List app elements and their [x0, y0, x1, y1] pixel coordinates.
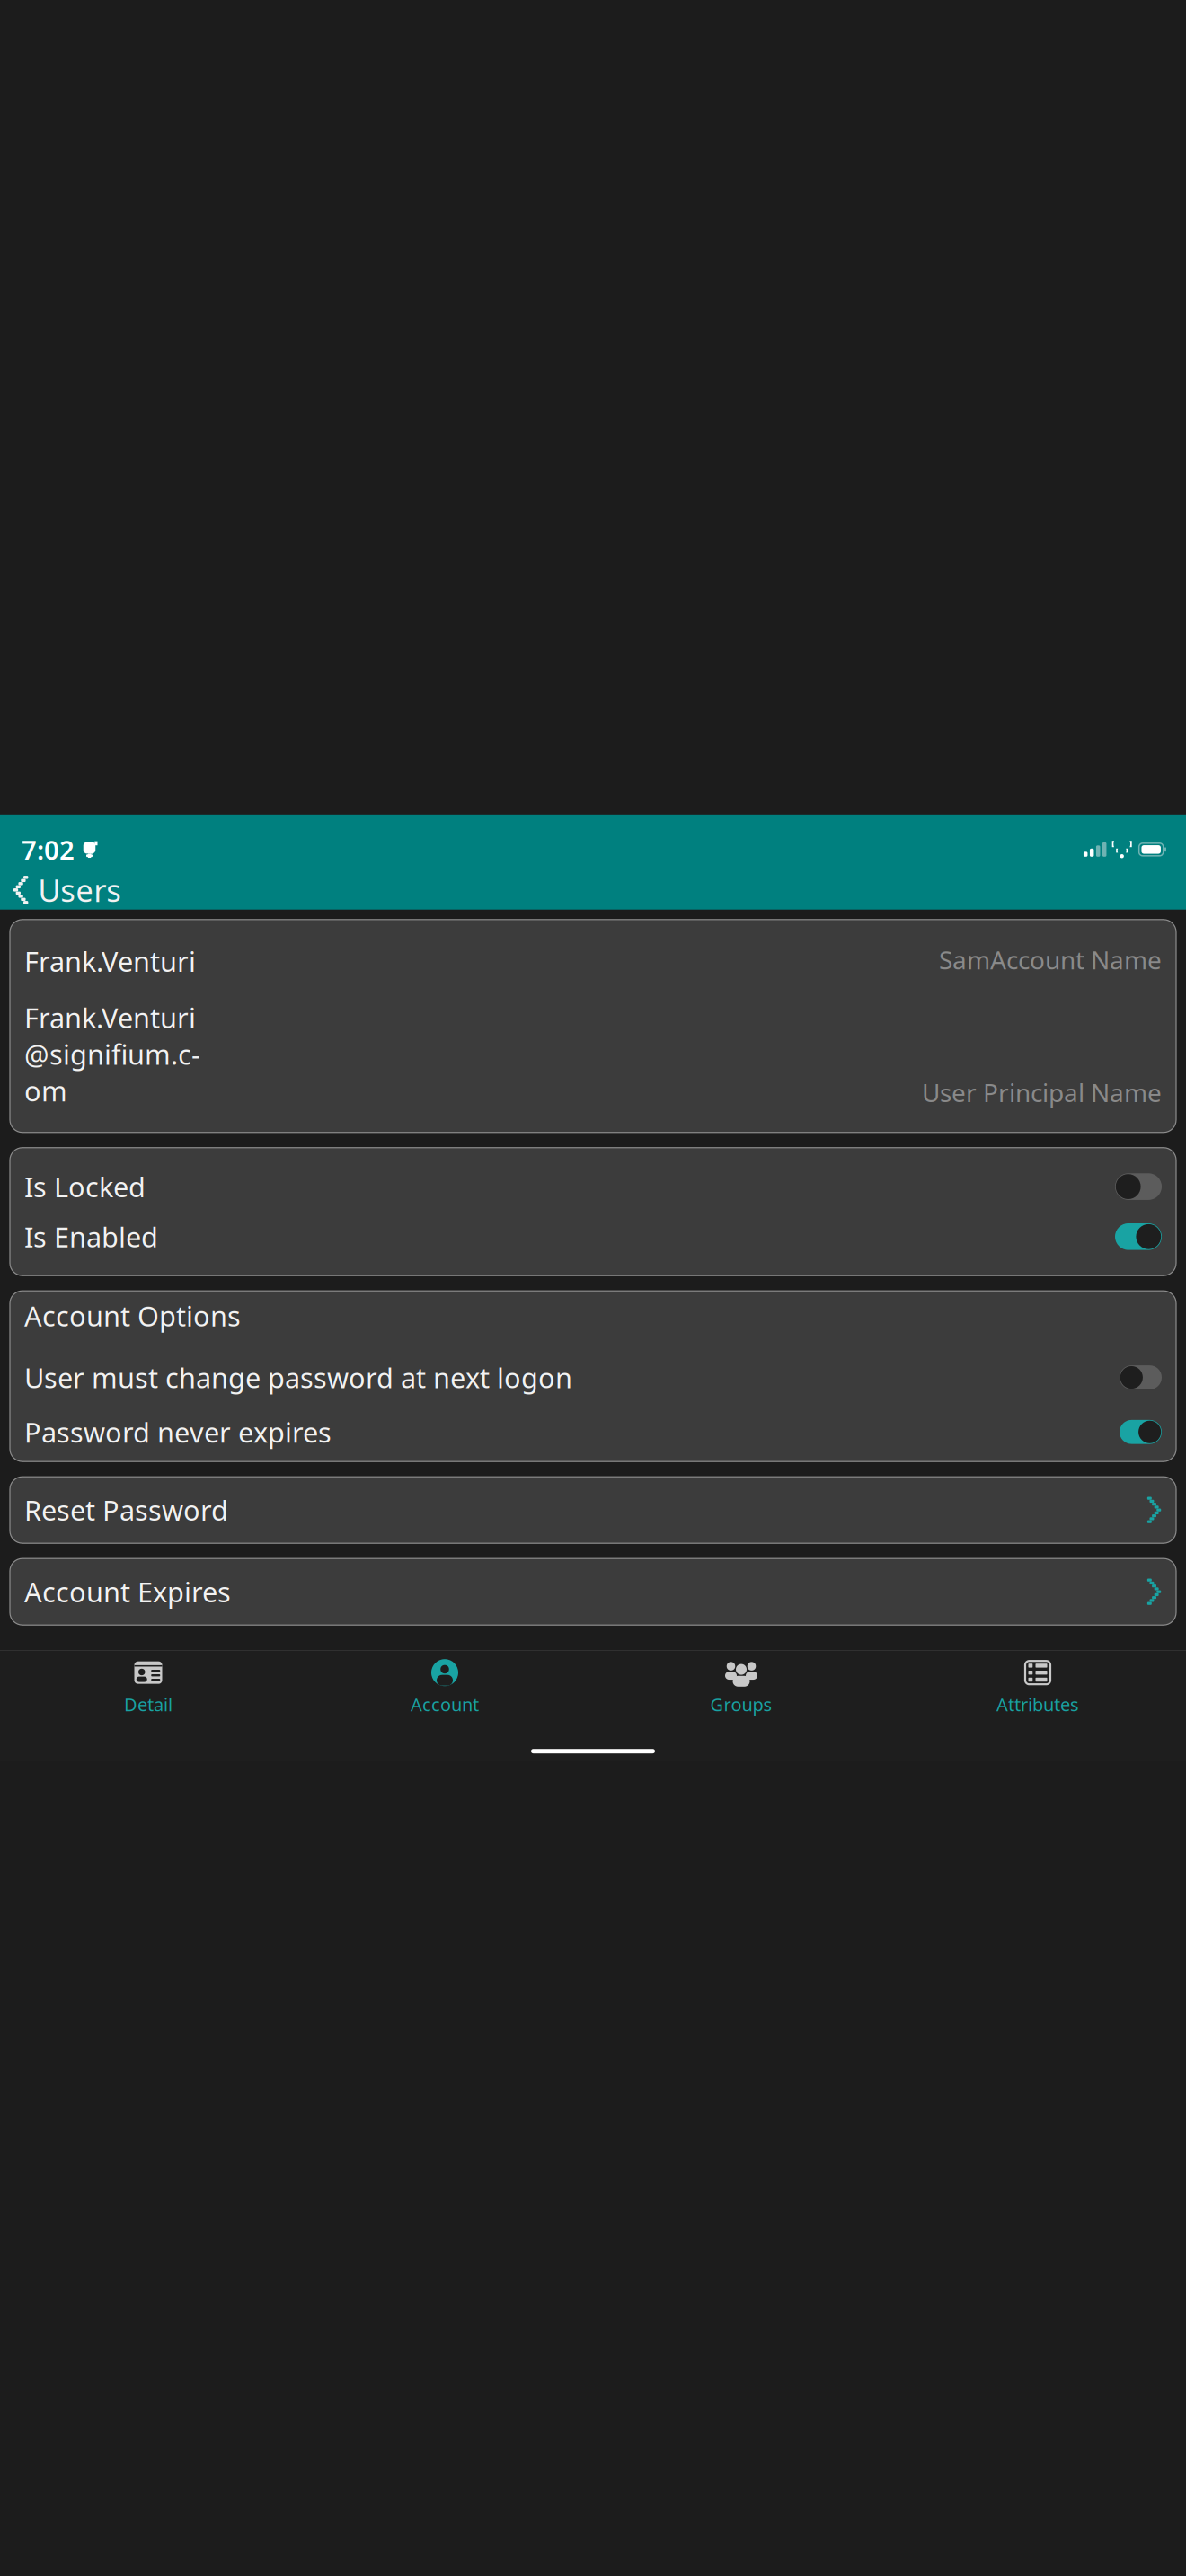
- staticText: Password never expires: [24, 1414, 332, 1450]
- staticText: Attributes: [996, 1692, 1079, 1716]
- staticText: Account: [411, 1692, 479, 1716]
- button[interactable]: Off: [1120, 1365, 1162, 1389]
- staticText: Frank.Venturi: [24, 943, 196, 979]
- staticText: User must change password at next logon: [24, 1359, 572, 1396]
- staticText: Groups: [710, 1692, 772, 1716]
- staticText: User Principal Name: [922, 1076, 1162, 1109]
- button[interactable]: On: [1120, 1420, 1162, 1444]
- staticText: Is Enabled: [24, 1218, 158, 1255]
- staticText: SamAccount Name: [939, 943, 1162, 976]
- staticText: Is Locked: [24, 1168, 146, 1205]
- button[interactable]: Detail: [0, 1650, 296, 1716]
- button[interactable]: Reset Password: [10, 1477, 1176, 1543]
- button[interactable]: Account Expires: [10, 1559, 1176, 1625]
- staticText: Detail: [124, 1692, 173, 1716]
- button[interactable]: Users: [0, 863, 136, 917]
- button[interactable]: Account: [296, 1650, 593, 1716]
- button[interactable]: Off: [1115, 1173, 1162, 1200]
- staticText: Users: [38, 869, 122, 911]
- button[interactable]: Attributes: [889, 1650, 1186, 1716]
- staticText: Account Expires: [24, 1573, 231, 1610]
- staticText: Account Options: [24, 1297, 241, 1334]
- button[interactable]: Groups: [593, 1650, 889, 1716]
- staticText: 7:02: [22, 832, 75, 867]
- staticText: Frank.Venturi@signifium.com: [24, 999, 200, 1109]
- staticText: Reset Password: [24, 1492, 228, 1528]
- button[interactable]: On: [1115, 1223, 1162, 1250]
